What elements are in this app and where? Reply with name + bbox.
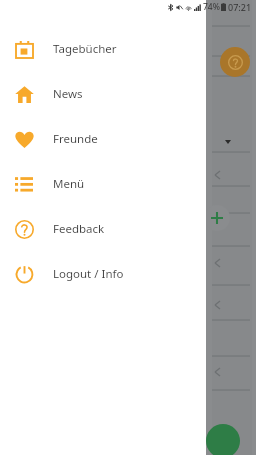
button[interactable]: News [0,71,206,116]
staticText: Menü [53,176,85,192]
staticText: 07:21 [228,1,252,13]
button[interactable]: Logout / Info [0,251,206,296]
button[interactable]: Add [204,205,230,231]
button[interactable]: Tagebücher [0,26,206,71]
staticText: Freunde [53,131,98,147]
button[interactable]: Freunde [0,116,206,161]
button[interactable]: Action [206,424,240,455]
staticText: Feedback [53,221,105,237]
staticText: News [53,86,83,102]
button[interactable]: Menü [0,161,206,206]
staticText: 74% [203,1,220,13]
staticText: Tagebücher [53,41,117,57]
staticText: Logout / Info [53,266,124,282]
button[interactable]: Help [220,47,250,77]
button[interactable]: Feedback [0,206,206,251]
